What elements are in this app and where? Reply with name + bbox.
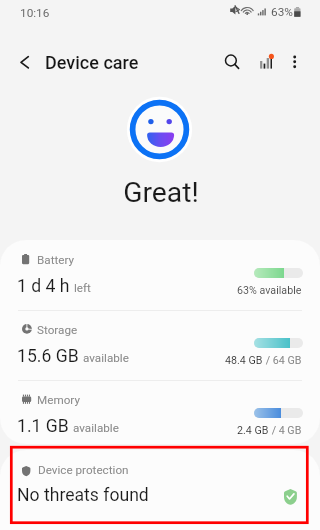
staticText: 10:16 (20, 6, 50, 20)
staticText: Great! (1, 176, 320, 209)
staticText: 1.1 GB (17, 416, 69, 437)
button[interactable]: Device protection (0, 450, 320, 530)
staticText: 15.6 GB (17, 346, 79, 367)
staticText: No threats found (17, 485, 149, 506)
staticText: Device care (45, 52, 139, 73)
staticText: available (83, 351, 129, 365)
staticText: 1 d 4 h (17, 276, 70, 297)
button[interactable]: Usage statistics (254, 50, 278, 74)
button[interactable]: Battery (0, 240, 320, 310)
staticText: Device protection (38, 463, 129, 477)
staticText: 63% available (237, 284, 302, 297)
staticText: Battery (37, 253, 75, 267)
staticText: / 4 GB (269, 424, 302, 437)
staticText: available (73, 421, 119, 435)
staticText: Storage (37, 323, 78, 337)
staticText: Memory (37, 393, 80, 407)
button[interactable]: Navigate up (11, 47, 39, 75)
staticText: / 64 GB (263, 354, 302, 367)
staticText: 2.4 GB (237, 424, 269, 437)
button[interactable]: Memory (0, 380, 320, 444)
staticText: 63% (271, 5, 293, 19)
staticText: 48.4 GB (225, 354, 263, 367)
button[interactable]: Storage (0, 310, 320, 380)
button[interactable]: More options (283, 49, 307, 73)
button[interactable]: Search (216, 46, 246, 76)
staticText: left (74, 281, 91, 295)
